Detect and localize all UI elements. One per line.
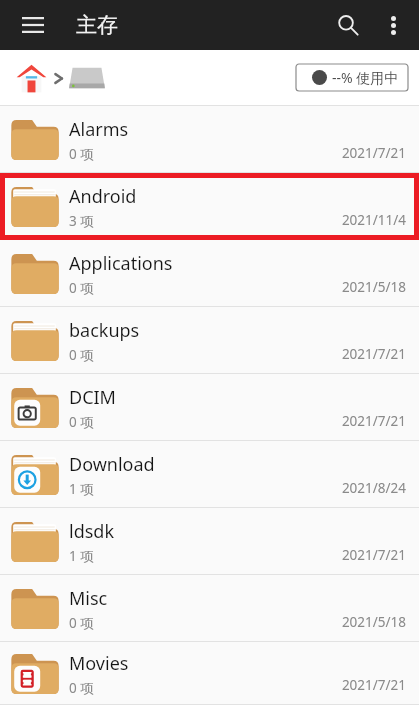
staticText: ldsdk bbox=[69, 519, 115, 544]
staticText: 2021/7/21 bbox=[341, 345, 406, 363]
staticText: 2021/8/24 bbox=[341, 479, 406, 497]
staticText: 3 项 bbox=[69, 212, 94, 230]
staticText: Movies bbox=[69, 651, 129, 676]
button[interactable]: More options bbox=[371, 3, 415, 47]
button[interactable]: ldsdk bbox=[0, 508, 419, 575]
staticText: --% 使用中 bbox=[332, 68, 399, 87]
staticText: 0 项 bbox=[69, 346, 94, 364]
staticText: 2021/5/18 bbox=[341, 613, 406, 631]
staticText: 0 项 bbox=[69, 614, 94, 632]
staticText: 2021/7/21 bbox=[341, 546, 406, 564]
button[interactable]: --% 使用中 bbox=[303, 63, 408, 92]
staticText: 0 项 bbox=[69, 279, 94, 297]
staticText: Download bbox=[69, 452, 155, 477]
button[interactable]: Applications bbox=[0, 240, 419, 307]
staticText: 2021/5/18 bbox=[341, 278, 406, 296]
button[interactable]: Internal storage bbox=[67, 58, 107, 98]
button[interactable]: Misc bbox=[0, 575, 419, 642]
staticText: 0 项 bbox=[69, 413, 94, 431]
staticText: 2021/7/21 bbox=[341, 144, 406, 162]
button[interactable]: Movies bbox=[0, 642, 419, 705]
staticText: DCIM bbox=[69, 385, 116, 410]
button[interactable]: Home bbox=[12, 59, 50, 97]
staticText: 1 项 bbox=[69, 480, 94, 498]
staticText: 2021/7/21 bbox=[341, 412, 406, 430]
staticText: 0 项 bbox=[69, 679, 94, 697]
staticText: 0 项 bbox=[69, 145, 94, 163]
button[interactable]: Android bbox=[0, 173, 419, 240]
button[interactable]: Search bbox=[325, 2, 371, 48]
staticText: backups bbox=[69, 318, 140, 343]
staticText: Alarms bbox=[69, 117, 129, 142]
staticText: 2021/11/4 bbox=[341, 211, 406, 229]
staticText: 1 项 bbox=[69, 547, 94, 565]
button[interactable]: Download bbox=[0, 441, 419, 508]
staticText: Applications bbox=[69, 251, 173, 276]
staticText: 主存 bbox=[76, 12, 118, 38]
button[interactable]: Alarms bbox=[0, 106, 419, 173]
button[interactable]: DCIM bbox=[0, 374, 419, 441]
button[interactable]: backups bbox=[0, 307, 419, 374]
button[interactable]: Open navigation drawer bbox=[10, 2, 56, 48]
staticText: Misc bbox=[69, 586, 108, 611]
staticText: Android bbox=[69, 184, 137, 209]
staticText: 2021/7/21 bbox=[341, 676, 406, 694]
